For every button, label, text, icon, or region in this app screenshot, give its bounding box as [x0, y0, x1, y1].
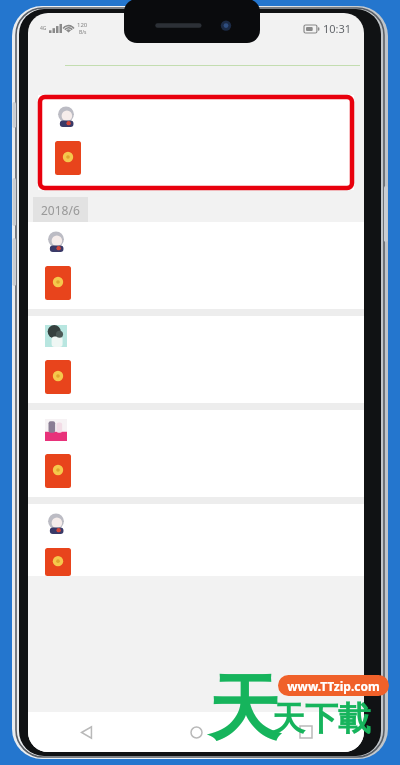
button[interactable]: Red packet: [28, 504, 364, 576]
button[interactable]: Red packet: [45, 454, 71, 488]
button[interactable]: Home: [176, 712, 216, 752]
staticText: 天下載: [272, 698, 371, 740]
staticText: 4G: [40, 25, 47, 32]
button[interactable]: Red packet: [55, 141, 81, 175]
button[interactable]: Recents: [286, 712, 326, 752]
staticText: 天: [208, 664, 280, 755]
button[interactable]: Red packet: [45, 360, 71, 394]
button[interactable]: Back: [66, 712, 106, 752]
button[interactable]: Red packet: [28, 316, 364, 403]
staticText: 10:31: [323, 21, 352, 36]
button[interactable]: Red packet: [28, 222, 364, 309]
button[interactable]: Red packet: [45, 548, 71, 576]
staticText: 2018/6: [41, 202, 80, 218]
staticText: www.TTzip.com: [287, 678, 380, 694]
button[interactable]: Red packet: [45, 266, 71, 300]
staticText: B/s: [79, 29, 87, 36]
button[interactable]: Red packet: [28, 410, 364, 497]
button[interactable]: Red packet: [38, 95, 354, 190]
staticText: 120: [77, 21, 88, 29]
